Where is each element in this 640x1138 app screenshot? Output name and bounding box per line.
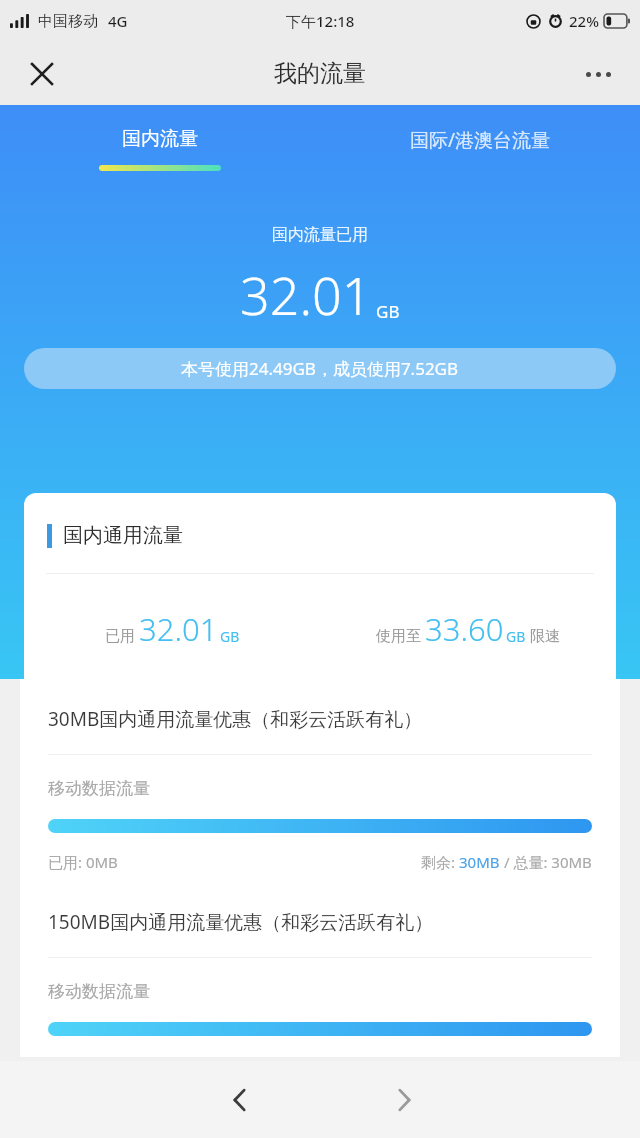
staticText: 国内通用流量 — [63, 523, 183, 548]
button[interactable]: 本号使用24.49GB，成员使用7.52GB — [24, 348, 616, 389]
button[interactable]: 30MB国内通用流量优惠（和彩云活跃有礼） — [20, 679, 620, 882]
staticText: 限速 — [530, 627, 560, 646]
staticText: 中国移动 — [38, 12, 98, 31]
button[interactable]: 150MB国内通用流量优惠（和彩云活跃有礼） — [20, 882, 620, 1057]
staticText: 32.01 — [240, 259, 372, 330]
staticText: 我的流量 — [274, 59, 366, 88]
button[interactable]: Back — [208, 1068, 272, 1132]
button[interactable]: More options — [572, 48, 624, 100]
staticText: 移动数据流量 — [48, 778, 150, 799]
staticText: 30MB — [459, 852, 500, 872]
staticText: 下午12:18 — [286, 11, 355, 31]
button[interactable]: Forward — [372, 1068, 436, 1132]
staticText: 33.60 — [425, 608, 504, 650]
staticText: GB — [376, 300, 400, 323]
staticText: 已用 — [105, 627, 135, 646]
staticText: 国际/港澳台流量 — [410, 127, 551, 153]
staticText: 22% — [569, 11, 599, 31]
staticText: 150MB国内通用流量优惠（和彩云活跃有礼） — [48, 909, 434, 935]
staticText: 剩余: — [421, 852, 459, 872]
staticText: 使用至 — [376, 627, 421, 646]
staticText: 30MB国内通用流量优惠（和彩云活跃有礼） — [48, 706, 423, 732]
staticText: / 总量: 30MB — [500, 852, 592, 872]
staticText: 32.01 — [139, 608, 218, 650]
staticText: 移动数据流量 — [48, 981, 150, 1002]
staticText: GB — [220, 627, 240, 646]
staticText: 国内流量 — [122, 127, 198, 151]
staticText: 国内流量已用 — [0, 225, 640, 245]
button[interactable]: 国内流量 — [0, 127, 320, 171]
staticText: 4G — [108, 11, 128, 31]
staticText: 已用: 0MB — [48, 852, 118, 872]
button[interactable]: Close — [16, 48, 68, 100]
staticText: 本号使用24.49GB，成员使用7.52GB — [181, 357, 459, 380]
staticText: GB — [506, 627, 526, 646]
button[interactable]: 国际/港澳台流量 — [320, 127, 640, 173]
